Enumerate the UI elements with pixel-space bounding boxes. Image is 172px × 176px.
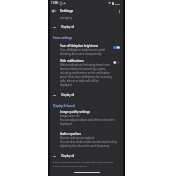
- staticText: Turn off Adaptive brightness: [60, 44, 99, 48]
- staticText: You can also make certain sounds stand o…: [60, 140, 117, 144]
- button[interactable]: Display all: [50, 93, 123, 97]
- staticText: panel. Note that notifications for incom…: [60, 75, 112, 79]
- staticText: Display all: [61, 154, 75, 158]
- staticText: priority over the device's settings.: [53, 165, 88, 168]
- button[interactable]: Audio equalizer: [50, 132, 123, 148]
- staticText: calls, alarms or tasks will still be: [60, 79, 99, 83]
- staticText: adjusting the volume for each frequency: [60, 144, 110, 148]
- button[interactable]: Navigate up: [51, 8, 57, 14]
- staticText: Settings changed here will only affect t…: [53, 161, 114, 164]
- staticText: Audio equalizer: [60, 132, 81, 136]
- staticText: Hide notifications: [60, 59, 84, 63]
- button[interactable]: Switch off: [112, 60, 121, 65]
- staticText: banner enhanced content) by a game,: [60, 67, 107, 71]
- staticText: Focus settings: [53, 36, 73, 40]
- staticText: Display & Sound: [53, 104, 75, 108]
- staticText: Settings: [60, 8, 74, 13]
- staticText: charging: [60, 16, 72, 20]
- staticText: You can adjust colours and effects of co…: [60, 118, 115, 122]
- staticText: dimming the screen unexpectedly: [60, 52, 102, 56]
- staticText: Turn off Adaptive brightness to avoid: [60, 48, 106, 52]
- staticText: displayed: [60, 83, 72, 87]
- staticText: 52%: [115, 2, 120, 5]
- staticText: displayed: [60, 122, 72, 126]
- staticText: Image saver: on: [60, 114, 80, 118]
- staticText: Image quality settings: [60, 110, 90, 114]
- staticText: Hides notifications (including those fro…: [60, 63, 110, 67]
- button[interactable]: Image quality settings: [50, 110, 123, 126]
- button[interactable]: Turn off Adaptive brightness: [50, 44, 123, 56]
- button[interactable]: Hide notifications: [50, 59, 123, 87]
- button[interactable]: Display all: [50, 154, 123, 158]
- staticText: 11:08: [51, 1, 58, 5]
- staticText: including notifications on the notificat…: [60, 71, 110, 75]
- button[interactable]: Display all: [50, 25, 123, 29]
- staticText: Display all: [61, 93, 75, 97]
- staticText: Restore settings are applied: [60, 136, 94, 140]
- button[interactable]: Switch on: [112, 45, 121, 50]
- button[interactable]: More options: [116, 8, 122, 14]
- staticText: Display all: [61, 25, 75, 29]
